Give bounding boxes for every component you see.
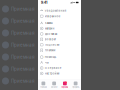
button[interactable]: Заказы xyxy=(38,20,81,26)
button[interactable]: Профиль xyxy=(70,79,81,90)
button[interactable]: Доставка xyxy=(38,31,81,37)
staticText: Магазин xyxy=(45,27,55,30)
staticText: Уведомления xyxy=(45,9,66,12)
button[interactable]: Корзина xyxy=(59,79,70,90)
button[interactable]: Помощь xyxy=(38,54,81,60)
staticText: Настройки xyxy=(45,72,60,75)
button[interactable]: Главная xyxy=(38,79,49,90)
staticText: Доставка xyxy=(45,32,57,35)
button[interactable]: Подписки xyxy=(38,42,81,48)
button[interactable]: О сервисе xyxy=(38,65,81,71)
staticText: Каталог xyxy=(51,86,58,88)
staticText: Приемная xyxy=(11,42,35,48)
button[interactable]: Платежи xyxy=(38,47,81,53)
staticText: Приемная xyxy=(11,6,35,12)
staticText: Платежи xyxy=(45,49,56,52)
staticText: 9:41 xyxy=(41,1,47,4)
staticText: Приемная xyxy=(11,30,35,36)
staticText: Профиль xyxy=(72,86,79,88)
staticText: Подписки xyxy=(45,43,60,46)
staticText: Приемная xyxy=(11,18,35,24)
staticText: Заказы xyxy=(45,21,53,25)
staticText: Приемная xyxy=(11,78,35,84)
button[interactable]: Уведомления xyxy=(38,8,81,13)
staticText: Избранное xyxy=(45,15,61,18)
staticText: Главная xyxy=(40,86,47,88)
staticText: Корзина xyxy=(61,86,68,88)
staticText: Помощь xyxy=(45,55,56,59)
button[interactable]: Избранное xyxy=(38,13,81,19)
button[interactable]: Магазин xyxy=(38,26,81,31)
staticText: Приемная xyxy=(11,54,35,60)
button[interactable]: Возврат xyxy=(38,37,81,42)
button[interactable]: Каталог xyxy=(49,79,60,90)
staticText: Чат xyxy=(45,61,49,64)
button[interactable]: Настройки xyxy=(38,71,81,76)
staticText: Возврат xyxy=(45,38,56,41)
staticText: Приемная xyxy=(11,66,35,72)
button[interactable]: Чат xyxy=(38,60,81,65)
staticText: О сервисе xyxy=(45,66,62,70)
